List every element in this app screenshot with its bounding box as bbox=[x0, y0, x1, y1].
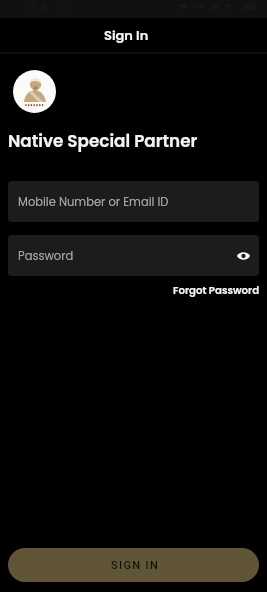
staticText: SIGN IN bbox=[111, 559, 160, 572]
staticText: Mobile Number or Email ID bbox=[18, 194, 169, 210]
staticText: Sign In bbox=[104, 26, 149, 44]
button[interactable]: Mobile Number or Email ID bbox=[8, 181, 259, 222]
button[interactable]: Password bbox=[8, 235, 259, 276]
staticText: Native Special Partner bbox=[8, 129, 198, 153]
staticText: Password bbox=[18, 248, 74, 264]
button[interactable]: Sign In bbox=[0, 18, 267, 52]
staticText: Forgot Password bbox=[173, 283, 260, 297]
button[interactable]: Show password bbox=[232, 245, 254, 267]
button[interactable]: SIGN IN bbox=[8, 548, 259, 582]
button[interactable]: Forgot Password bbox=[171, 281, 262, 299]
